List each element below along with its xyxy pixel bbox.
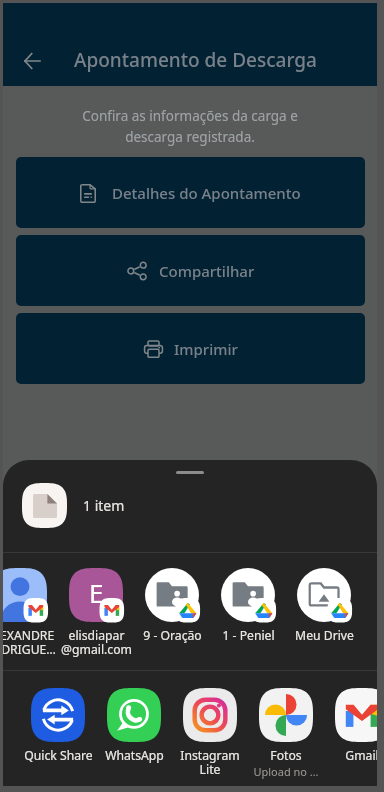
staticText: 1 - Peniel: [222, 627, 275, 644]
staticText: Meu Drive: [295, 627, 354, 644]
staticText: Gmail: [345, 747, 377, 764]
button[interactable]: WhatsApp: [96, 685, 172, 786]
button[interactable]: 9 - Oração: [134, 565, 210, 667]
staticText: Instagram Lite: [180, 747, 240, 778]
button[interactable]: 1 item: [3, 474, 377, 536]
button[interactable]: E: [58, 565, 134, 667]
staticText: Detalhes do Apontamento: [112, 183, 301, 203]
button[interactable]: Detalhes do Apontamento: [16, 157, 365, 228]
button[interactable]: Gmail: [324, 685, 377, 786]
staticText: ALEXANDRE RODRIGUE…: [3, 627, 56, 658]
staticText: elisdiapar @gmail.com: [61, 627, 132, 658]
button[interactable]: Back: [13, 42, 50, 79]
staticText: Upload no …: [253, 764, 319, 779]
button[interactable]: Imprimir: [16, 313, 365, 384]
staticText: WhatsApp: [105, 747, 164, 764]
staticText: 9 - Oração: [143, 627, 202, 644]
staticText: Imprimir: [174, 339, 238, 359]
button[interactable]: Fotos: [248, 685, 324, 786]
button[interactable]: 1 - Peniel: [210, 565, 286, 667]
staticText: Apontamento de Descarga: [74, 47, 317, 73]
button[interactable]: Quick Share: [20, 685, 96, 786]
staticText: Fotos: [270, 747, 302, 764]
staticText: Confira as informações da carga e descar…: [3, 107, 377, 146]
button[interactable]: Meu Drive: [286, 565, 362, 667]
staticText: E: [89, 575, 104, 610]
staticText: Quick Share: [24, 747, 93, 764]
staticText: 1 item: [83, 496, 125, 515]
button[interactable]: Instagram Lite: [172, 685, 248, 786]
staticText: Compartilhar: [159, 261, 255, 281]
button[interactable]: Compartilhar: [16, 235, 365, 306]
button[interactable]: ALEXANDRE RODRIGUE…: [3, 565, 58, 667]
